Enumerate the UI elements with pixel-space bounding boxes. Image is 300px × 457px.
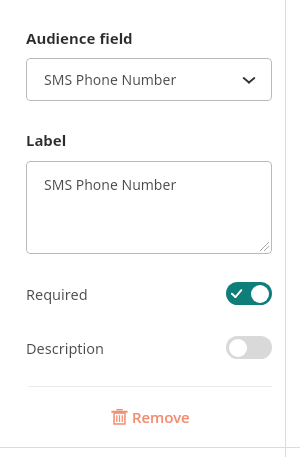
staticText: Description <box>26 338 105 358</box>
staticText: SMS Phone Number <box>44 175 177 194</box>
other: Description <box>226 336 272 359</box>
staticText: Remove <box>132 407 190 427</box>
button[interactable]: Remove <box>0 387 300 446</box>
button[interactable]: Required <box>0 282 300 305</box>
button[interactable]: Description <box>0 336 300 359</box>
staticText: Required <box>26 284 88 304</box>
button[interactable]: SMS Phone Number <box>26 161 272 254</box>
staticText: Audience field <box>26 28 133 48</box>
staticText: SMS Phone Number <box>44 70 177 89</box>
button[interactable]: SMS Phone Number <box>26 58 272 101</box>
staticText: Label <box>26 130 67 150</box>
other: Required <box>226 282 272 305</box>
